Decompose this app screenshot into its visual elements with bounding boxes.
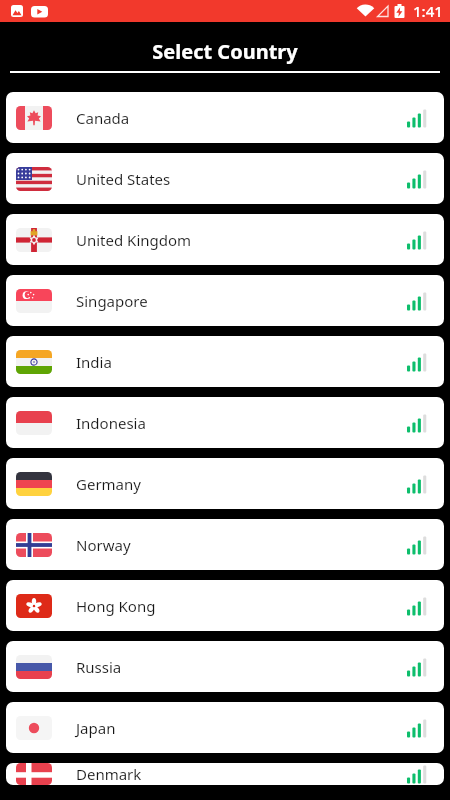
button[interactable]: India bbox=[6, 336, 444, 387]
button[interactable]: United Kingdom bbox=[6, 214, 444, 265]
staticText: Canada bbox=[76, 108, 130, 128]
staticText: Norway bbox=[76, 535, 131, 555]
button[interactable]: Denmark bbox=[6, 763, 444, 785]
staticText: Denmark bbox=[76, 764, 142, 784]
button[interactable]: Indonesia bbox=[6, 397, 444, 448]
button[interactable]: Russia bbox=[6, 641, 444, 692]
staticText: 1:41 bbox=[413, 1, 443, 21]
staticText: United Kingdom bbox=[76, 230, 192, 250]
staticText: Hong Kong bbox=[76, 596, 156, 616]
button[interactable]: Singapore bbox=[6, 275, 444, 326]
button[interactable]: United States bbox=[6, 153, 444, 204]
staticText: India bbox=[76, 352, 112, 372]
button[interactable]: Hong Kong bbox=[6, 580, 444, 631]
button[interactable]: Japan bbox=[6, 702, 444, 753]
staticText: Germany bbox=[76, 474, 141, 494]
button[interactable]: Germany bbox=[6, 458, 444, 509]
staticText: Singapore bbox=[76, 291, 148, 311]
staticText: Select Country bbox=[152, 38, 298, 65]
button[interactable]: Canada bbox=[6, 92, 444, 143]
staticText: Russia bbox=[76, 657, 122, 677]
staticText: United States bbox=[76, 169, 171, 189]
staticText: Japan bbox=[76, 718, 116, 738]
button[interactable]: Norway bbox=[6, 519, 444, 570]
staticText: Indonesia bbox=[76, 413, 146, 433]
